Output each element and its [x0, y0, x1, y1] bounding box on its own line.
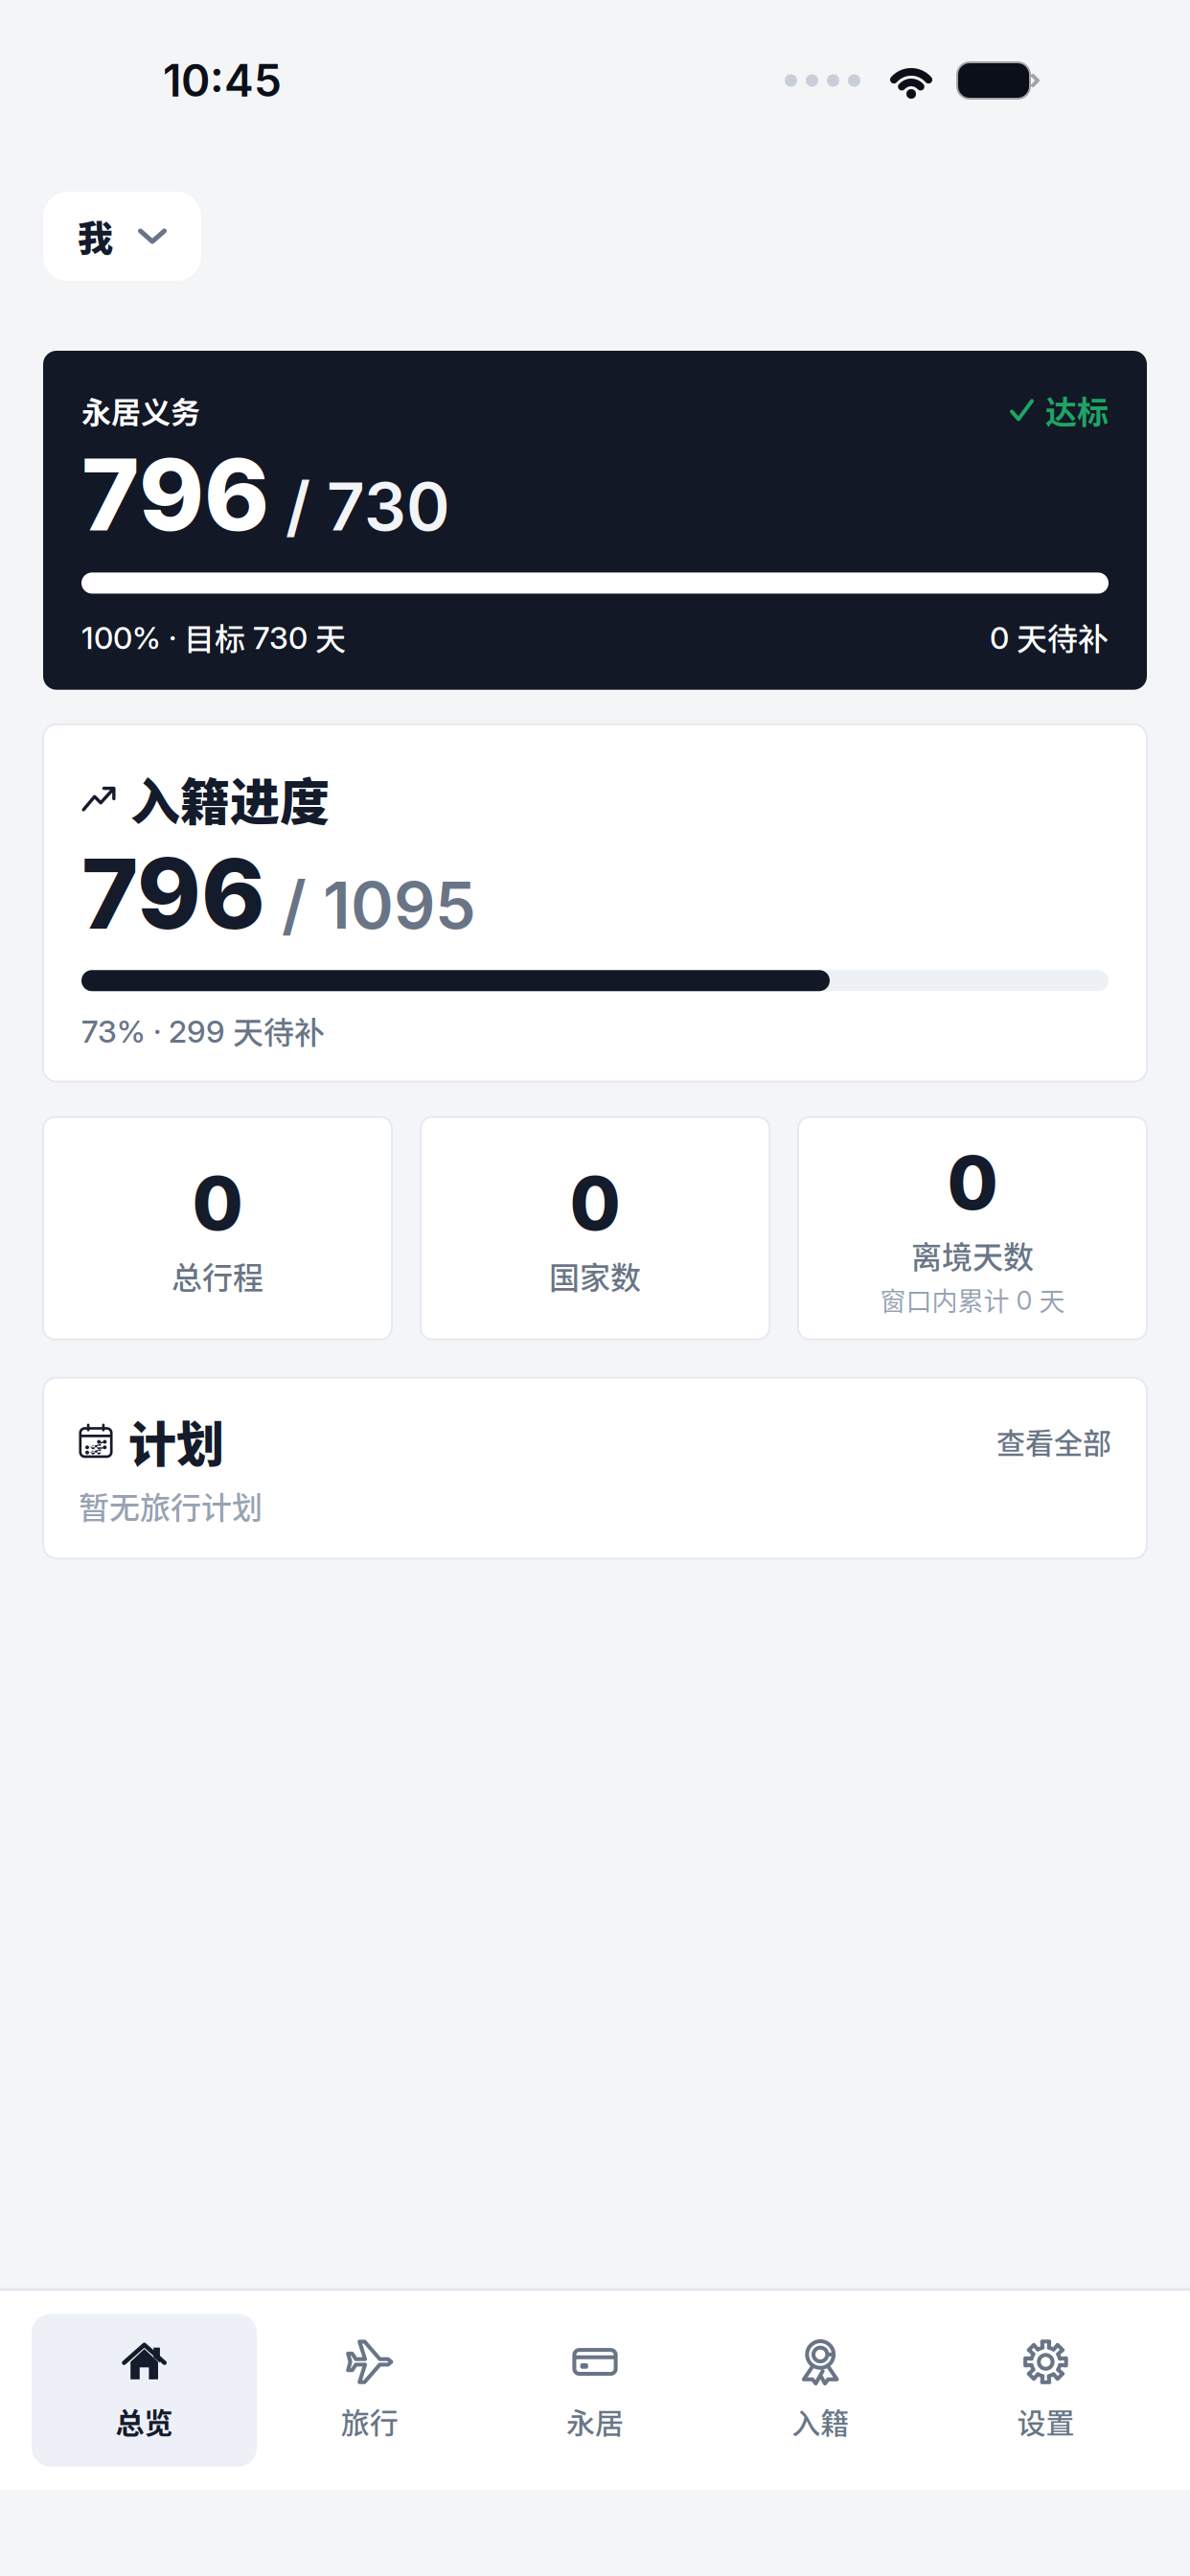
staticText: 796: [81, 435, 269, 554]
staticText: 达标: [1045, 387, 1109, 433]
button[interactable]: 我: [43, 192, 201, 281]
button[interactable]: 总览: [32, 2314, 257, 2467]
staticText: 设置: [1017, 2400, 1074, 2442]
staticText: 旅行: [341, 2400, 398, 2442]
staticText: 我: [78, 211, 113, 262]
staticText: 总览: [116, 2400, 173, 2442]
button[interactable]: 入籍: [708, 2314, 933, 2467]
staticText: 暂无旅行计划: [79, 1483, 263, 1528]
staticText: 入籍: [792, 2400, 849, 2442]
button[interactable]: 查看全部: [996, 1420, 1111, 1462]
staticText: 0: [192, 1158, 243, 1248]
button[interactable]: 旅行: [257, 2314, 482, 2467]
staticText: 100% · 目标 730 天: [81, 615, 346, 659]
button[interactable]: 永居: [482, 2314, 708, 2467]
button[interactable]: 设置: [933, 2314, 1158, 2467]
staticText: 796: [81, 835, 265, 952]
staticText: 查看全部: [996, 1420, 1111, 1462]
staticText: 国家数: [549, 1253, 641, 1298]
staticText: / 730: [269, 466, 450, 546]
staticText: 离境天数: [911, 1233, 1034, 1277]
staticText: 永居义务: [81, 389, 200, 432]
staticText: 73% · 299 天待补: [81, 1008, 325, 1053]
staticText: 0: [947, 1138, 998, 1227]
staticText: 总行程: [172, 1253, 263, 1298]
staticText: 入籍进度: [130, 763, 330, 835]
staticText: / 1095: [265, 865, 476, 944]
staticText: 0 天待补: [990, 615, 1109, 659]
staticText: 计划: [128, 1406, 224, 1476]
staticText: 永居: [566, 2400, 624, 2442]
staticText: 10:45: [163, 54, 282, 107]
staticText: 0: [570, 1158, 620, 1248]
staticText: 窗口内累计 0 天: [880, 1281, 1065, 1319]
